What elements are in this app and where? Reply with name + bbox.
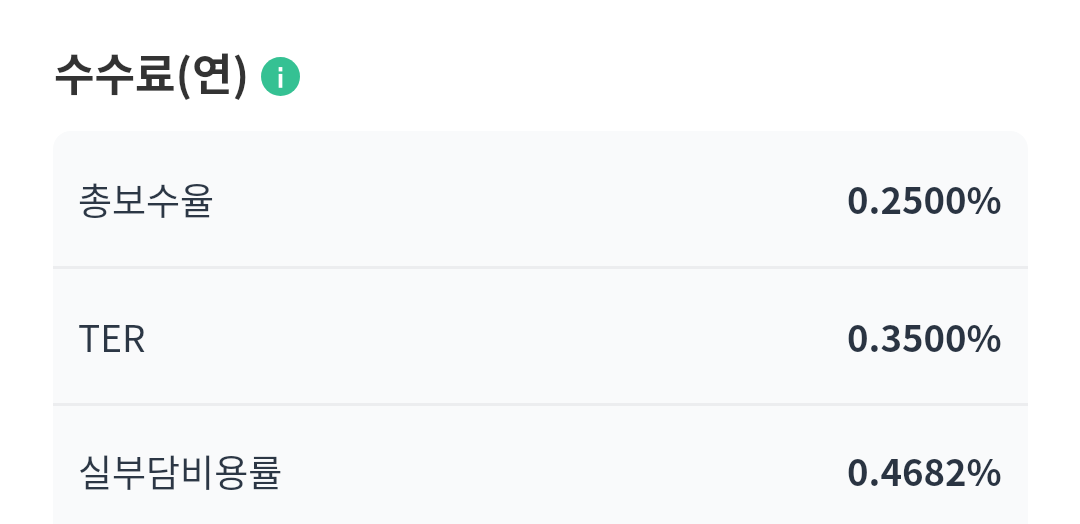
button[interactable]: Fee information [261, 57, 300, 96]
button[interactable]: TER [53, 269, 1028, 403]
button[interactable]: 실부담비용률 [53, 406, 1028, 524]
staticText: 0.4682% [847, 444, 1002, 497]
staticText: TER [78, 309, 146, 363]
staticText: 총보수율 [78, 172, 215, 226]
staticText: 0.3500% [847, 310, 1002, 363]
staticText: 수수료(연) [54, 40, 250, 104]
button[interactable]: 총보수율 [53, 131, 1028, 266]
staticText: 0.2500% [847, 172, 1002, 225]
staticText: 실부담비용률 [78, 444, 283, 498]
